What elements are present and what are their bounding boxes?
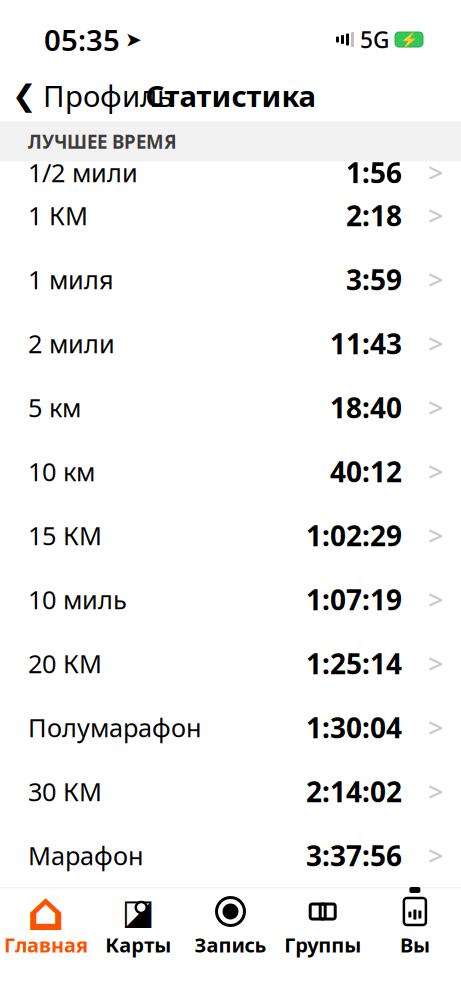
button[interactable]: Группы [277,888,369,968]
staticText: > [428,155,443,190]
staticText: > [428,838,443,873]
button[interactable]: 15 КМ [0,503,461,567]
staticText: > [428,774,443,809]
staticText: 1:02:29 [306,517,402,554]
staticText: 2:18 [346,197,402,234]
staticText: Полумарафон [28,711,202,744]
staticText: 3:59 [346,261,402,298]
staticText: Марафон [28,839,144,872]
button[interactable]: Полумарафон [0,695,461,759]
staticText: ⌂ [27,881,65,942]
staticText: Статистика [145,76,315,115]
button[interactable]: ⌂ [0,888,92,968]
button[interactable]: 30 КМ [0,759,461,823]
staticText: > [428,198,443,233]
staticText: 05:35 [44,20,120,59]
staticText: 1 КМ [28,199,88,232]
staticText: ⚡ [400,31,418,48]
staticText: Вы [400,931,430,958]
button[interactable]: 1 миля [0,247,461,311]
button[interactable]: 5 км [0,375,461,439]
staticText: > [428,454,443,489]
staticText: 18:40 [330,389,402,426]
staticText: > [428,262,443,297]
staticText: 30 КМ [28,775,102,808]
staticText: ❮ [12,79,37,112]
button[interactable]: ❮ [0,70,173,121]
staticText: 1:30:04 [306,709,402,746]
staticText: 1:25:14 [306,645,402,682]
staticText: > [428,710,443,745]
button[interactable]: 10 км [0,439,461,503]
staticText: Карты [105,931,171,958]
button[interactable]: 1 КМ [0,183,461,247]
button[interactable]: 20 КМ [0,631,461,695]
staticText: 2:14:02 [306,773,402,810]
staticText: 10 км [28,455,95,488]
button[interactable]: Марафон [0,823,461,887]
staticText: Главная [4,931,88,958]
staticText: 1/2 мили [28,156,138,189]
staticText: 1 миля [28,263,114,296]
staticText: 2 мили [28,327,115,360]
staticText: > [428,646,443,681]
staticText: ◪ [122,892,155,931]
staticText: 3:37:56 [306,837,402,874]
staticText: 1:56 [346,154,402,191]
staticText: Профиль [43,76,173,115]
button[interactable]: Вы [369,888,461,968]
staticText: ЛУЧШЕЕ ВРЕМЯ [28,129,177,154]
button[interactable]: ◪ [92,888,184,968]
staticText: Запись [194,931,266,958]
staticText: > [428,390,443,425]
staticText: > [428,326,443,361]
staticText: 1:07:19 [306,581,402,618]
staticText: > [428,518,443,553]
staticText: 11:43 [330,325,402,362]
staticText: 40:12 [330,453,402,490]
staticText: 20 КМ [28,647,102,680]
staticText: 5G [360,24,389,54]
staticText: 15 КМ [28,519,102,552]
staticText: Группы [284,931,361,958]
staticText: ➤ [125,28,142,51]
staticText: 5 км [28,391,81,424]
staticText: 10 миль [28,583,127,616]
button[interactable]: 10 миль [0,567,461,631]
button[interactable]: 2 мили [0,311,461,375]
button[interactable]: Запись [184,888,277,968]
staticText: > [428,582,443,617]
